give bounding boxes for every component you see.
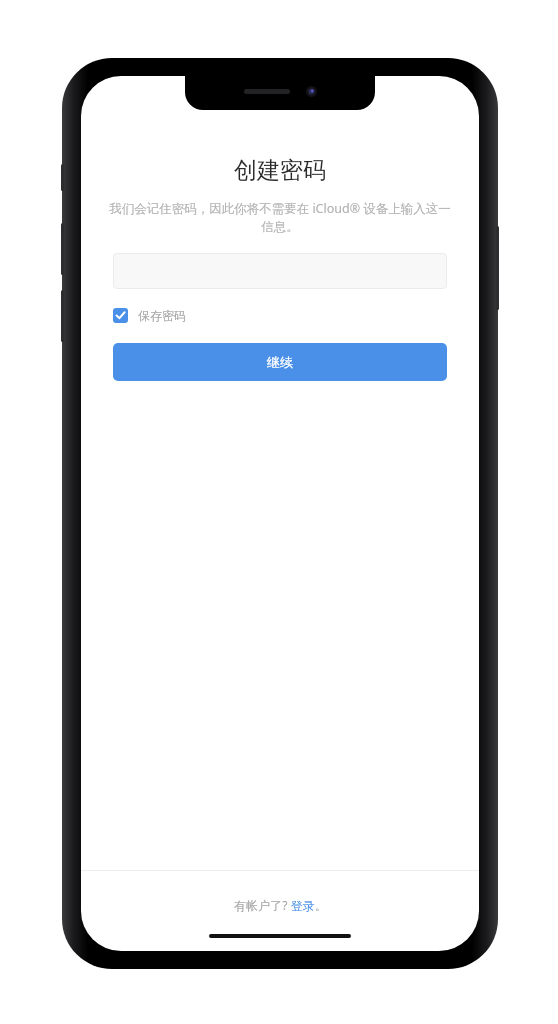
- staticText: 我们会记住密码，因此你将不需要在 iCloud® 设备上输入这一信息。: [109, 200, 451, 235]
- staticText: 有帐户了? 登录。: [234, 897, 327, 913]
- staticText: 创建密码: [81, 156, 479, 185]
- button[interactable]: 继续: [113, 343, 447, 381]
- button[interactable]: 有帐户了? 登录。: [81, 897, 479, 913]
- staticText: 保存密码: [138, 308, 186, 323]
- button[interactable]: 保存密码: [113, 308, 186, 323]
- other: Home indicator: [209, 934, 351, 938]
- button[interactable]: [113, 253, 447, 289]
- staticText: 继续: [267, 354, 293, 370]
